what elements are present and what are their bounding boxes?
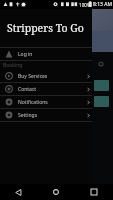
staticText: Log in <box>18 51 33 58</box>
staticText: Booking <box>3 62 23 69</box>
button[interactable]: Recent apps <box>75 184 113 200</box>
staticText: Settings <box>18 112 38 119</box>
button[interactable]: Notifications <box>0 96 92 108</box>
button[interactable]: Log in <box>0 48 92 60</box>
staticText: 100% <box>79 2 91 8</box>
button[interactable]: Card <box>94 80 109 91</box>
staticText: Buy Services <box>18 73 48 80</box>
button[interactable]: Back <box>0 184 37 200</box>
button[interactable]: Contact <box>0 83 92 95</box>
staticText: Strippers To Go <box>7 21 84 35</box>
button[interactable]: Buy Services <box>0 70 92 82</box>
button[interactable]: Home <box>37 184 75 200</box>
staticText: 8:13 AM <box>93 1 112 8</box>
staticText: Notifications <box>18 99 48 106</box>
button[interactable]: More <box>97 60 105 68</box>
button[interactable]: Card <box>94 96 109 107</box>
button[interactable]: Settings <box>0 109 92 121</box>
staticText: Contact <box>18 86 37 93</box>
